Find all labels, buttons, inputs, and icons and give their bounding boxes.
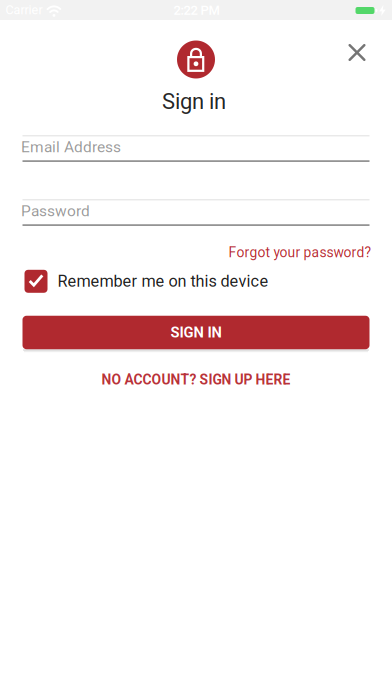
staticText: NO ACCOUNT? SIGN UP HERE	[101, 372, 290, 388]
button[interactable]: NO ACCOUNT? SIGN UP HERE	[101, 372, 290, 388]
staticText: Sign in	[162, 89, 226, 114]
staticText: Remember me on this device	[57, 272, 268, 291]
button[interactable]: Remember me on this device	[24, 270, 268, 293]
button[interactable]: SIGN IN	[22, 316, 369, 349]
button[interactable]: Close	[348, 44, 365, 61]
staticText: Carrier	[5, 3, 42, 17]
button[interactable]: Forgot your password?	[228, 244, 371, 261]
staticText: Forgot your password?	[228, 244, 371, 261]
staticText: SIGN IN	[170, 324, 221, 341]
staticText: Email Address	[21, 138, 121, 156]
staticText: 2:22 PM	[173, 3, 219, 18]
staticText: Password	[21, 202, 90, 220]
button[interactable]: Password	[22, 199, 369, 226]
button[interactable]: Email Address	[22, 135, 369, 162]
